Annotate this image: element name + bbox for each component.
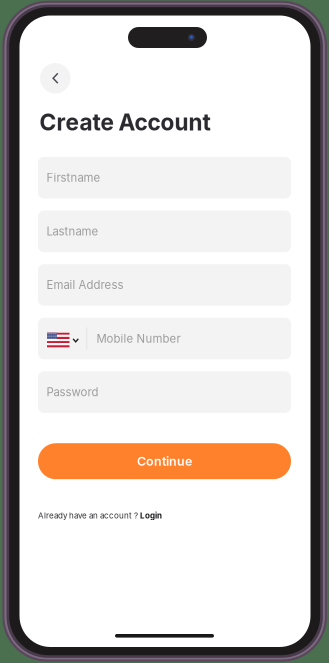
staticText: Mobile Number: [96, 332, 180, 345]
button[interactable]: Password: [38, 371, 291, 413]
staticText: Create Account: [39, 108, 210, 136]
button[interactable]: Back: [40, 63, 70, 93]
staticText: Password: [46, 385, 98, 399]
staticText: Lastname: [46, 224, 98, 238]
staticText: Firstname: [46, 171, 100, 185]
staticText: Already have an account ?: [38, 511, 140, 520]
button[interactable]: Select country code: [38, 318, 86, 359]
button[interactable]: Firstname: [38, 157, 291, 198]
button[interactable]: Email Address: [38, 264, 291, 306]
staticText: Email Address: [46, 278, 123, 292]
staticText: Login: [140, 511, 162, 520]
staticText: Continue: [137, 454, 192, 469]
button[interactable]: Lastname: [38, 210, 291, 252]
button[interactable]: Continue: [38, 443, 291, 479]
button[interactable]: Already have an account ?: [38, 511, 162, 520]
